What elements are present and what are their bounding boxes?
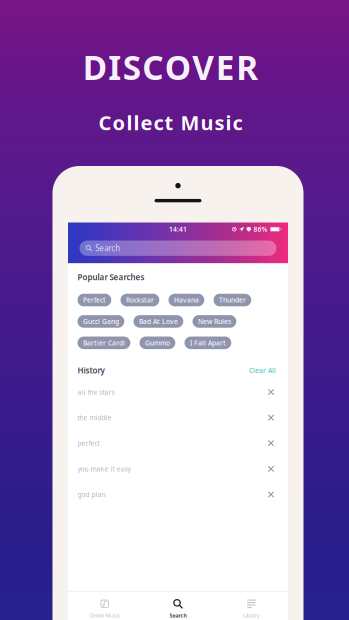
staticText: History [77,365,104,376]
button[interactable]: I Fall Apart [184,336,231,349]
button[interactable]: the middle [77,405,278,430]
button[interactable]: Bartier Cardi [77,336,130,349]
staticText: Online Music [89,612,120,619]
staticText: Rockstar [126,296,154,304]
staticText: Gucci Gang [83,317,119,326]
button[interactable]: Rockstar [120,294,159,306]
button[interactable]: Bad At Love [133,315,183,328]
staticText: Search [95,243,120,253]
staticText: Clear All [249,366,276,375]
button[interactable]: Online Music [68,592,141,620]
staticText: the middle [77,413,111,422]
staticText: DISCOVER [83,45,258,89]
staticText: all the stars [77,388,114,396]
button[interactable]: Havana [168,294,204,306]
staticText: god plan [77,490,105,499]
staticText: Perfect [83,296,106,304]
staticText: Collect Music [98,109,242,136]
button[interactable]: Thunder [213,294,251,306]
button[interactable]: Gummo [139,336,175,349]
staticText: Havana [174,296,199,304]
staticText: Bad At Love [139,317,178,326]
staticText: you make it easy [77,464,130,473]
staticText: Search [169,612,186,619]
button[interactable]: you make it easy [77,456,278,482]
staticText: 86% [253,225,267,234]
staticText: Popular Searches [77,272,144,282]
button[interactable]: perfect [77,430,278,456]
staticText: I Fall Apart [190,338,226,347]
button[interactable]: New Rules [192,315,236,328]
staticText: Gummo [145,338,170,347]
staticText: Thunder [219,296,246,304]
button[interactable]: god plan [77,482,278,507]
staticText: New Rules [198,317,231,326]
button[interactable]: all the stars [77,379,278,405]
button[interactable]: Library [215,592,288,620]
staticText: 14:41 [169,225,187,234]
button[interactable]: Clear All [249,366,278,375]
staticText: Library [243,612,260,619]
button[interactable]: Search [141,592,215,620]
staticText: Bartier Cardi [83,338,125,347]
button[interactable]: Perfect [77,294,111,306]
button[interactable]: Gucci Gang [77,315,124,328]
staticText: perfect [77,439,99,448]
